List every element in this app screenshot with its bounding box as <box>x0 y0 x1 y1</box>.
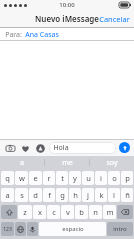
button[interactable]: Shift <box>1 205 17 219</box>
button[interactable]: a <box>0 156 44 169</box>
staticText: u <box>86 173 91 183</box>
button[interactable]: n <box>89 205 102 219</box>
staticText: b <box>79 207 84 217</box>
button[interactable]: Send <box>119 142 130 153</box>
button[interactable]: b <box>75 205 88 219</box>
staticText: v <box>66 207 70 217</box>
button[interactable]: z <box>18 205 32 219</box>
button[interactable]: k <box>95 188 107 202</box>
button[interactable]: Hola <box>49 142 116 154</box>
staticText: espacio <box>62 225 84 233</box>
button[interactable]: Cancelar <box>95 11 134 27</box>
staticText: r <box>47 173 51 183</box>
button[interactable]: Digital Touch <box>19 142 31 154</box>
button[interactable]: Backspace <box>117 205 133 219</box>
staticText: s <box>20 190 24 200</box>
button[interactable]: intro <box>107 222 133 236</box>
staticText: soy <box>106 158 118 168</box>
staticText: c <box>52 207 56 217</box>
staticText: e <box>33 173 38 183</box>
button[interactable]: q <box>1 171 14 185</box>
staticText: Hola <box>53 143 69 153</box>
button[interactable]: Para: <box>0 28 134 41</box>
staticText: me <box>62 158 73 168</box>
button[interactable]: w <box>15 171 28 185</box>
button[interactable]: i <box>95 171 107 185</box>
staticText: n <box>93 207 98 217</box>
staticText: y <box>73 173 77 183</box>
button[interactable]: m <box>103 205 116 219</box>
staticText: x <box>38 207 42 217</box>
staticText: 10:00 <box>59 1 75 9</box>
staticText: p <box>125 173 130 183</box>
button[interactable]: l <box>108 188 120 202</box>
staticText: Ana Casas <box>25 30 59 40</box>
button[interactable]: u <box>82 171 94 185</box>
staticText: intro <box>113 225 127 233</box>
staticText: z <box>23 207 27 217</box>
staticText: d <box>33 190 38 200</box>
button[interactable]: x <box>33 205 46 219</box>
staticText: o <box>112 173 117 183</box>
staticText: a <box>5 190 10 200</box>
staticText: Cancelar <box>99 14 130 24</box>
staticText: 123 <box>3 226 12 233</box>
staticText: Para: <box>5 30 22 40</box>
button[interactable]: j <box>82 188 94 202</box>
staticText: k <box>99 190 104 200</box>
staticText: a <box>20 158 24 168</box>
button[interactable]: v <box>61 205 74 219</box>
button[interactable]: Dictation <box>27 222 38 236</box>
button[interactable]: f <box>43 188 55 202</box>
staticText: m <box>106 207 114 217</box>
button[interactable]: Apps <box>34 142 46 154</box>
button[interactable]: c <box>47 205 60 219</box>
staticText: h <box>73 190 78 200</box>
staticText: j <box>87 190 89 200</box>
staticText: w <box>19 173 25 183</box>
staticText: i <box>100 173 102 183</box>
button[interactable]: me <box>45 156 89 169</box>
staticText: l <box>113 190 115 200</box>
button[interactable]: Change language <box>15 222 26 236</box>
staticText: Nuevo iMessage <box>35 13 99 24</box>
button[interactable]: s <box>15 188 28 202</box>
button[interactable]: o <box>108 171 120 185</box>
button[interactable]: p <box>121 171 133 185</box>
button[interactable]: t <box>56 171 68 185</box>
staticText: ñ <box>125 190 130 200</box>
staticText: t <box>61 173 64 183</box>
button[interactable]: a <box>1 188 14 202</box>
staticText: f <box>48 190 51 200</box>
button[interactable]: d <box>29 188 42 202</box>
staticText: g <box>60 190 65 200</box>
button[interactable]: espacio <box>39 222 106 236</box>
button[interactable]: e <box>29 171 42 185</box>
button[interactable]: Camera <box>4 142 16 154</box>
button[interactable]: y <box>69 171 81 185</box>
button[interactable]: 123 <box>1 222 14 236</box>
button[interactable]: r <box>43 171 55 185</box>
button[interactable]: soy <box>90 156 134 169</box>
staticText: q <box>5 173 10 183</box>
button[interactable]: g <box>56 188 68 202</box>
button[interactable]: h <box>69 188 81 202</box>
button[interactable]: ñ <box>121 188 133 202</box>
